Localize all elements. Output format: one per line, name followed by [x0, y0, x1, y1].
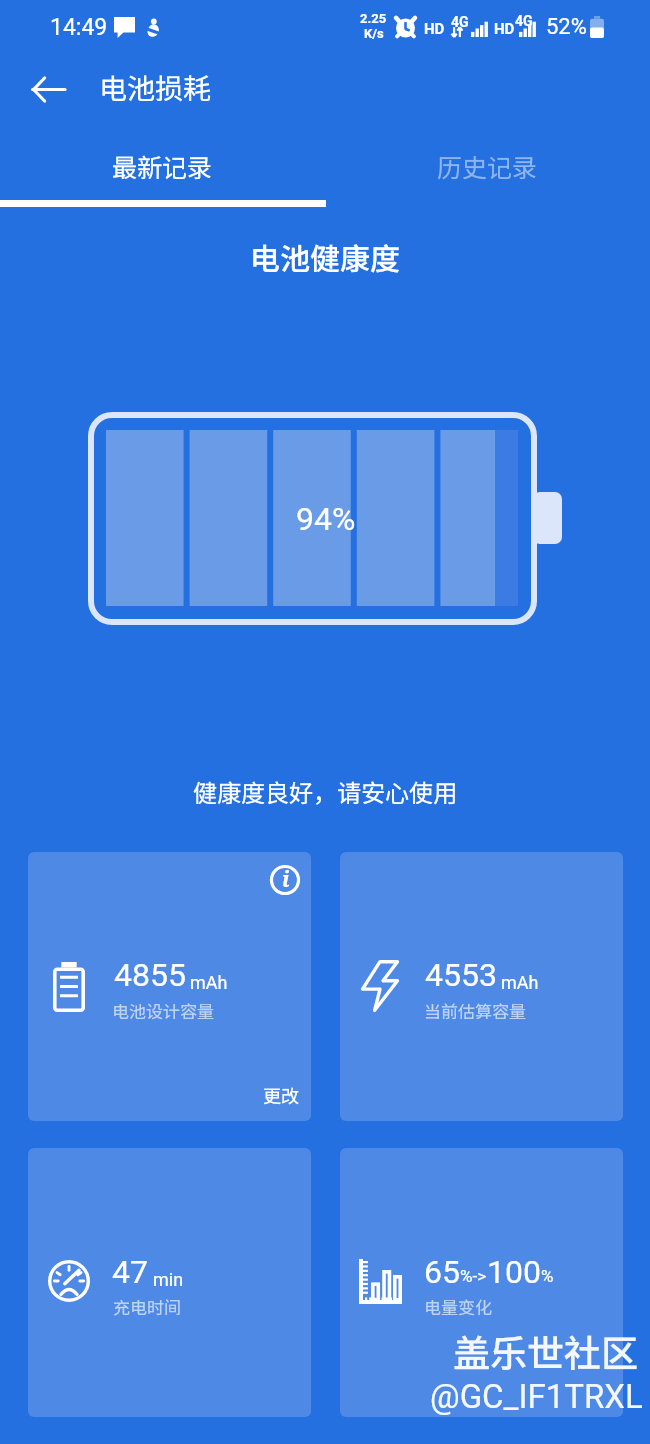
staticText: 14:49: [50, 14, 108, 41]
staticText: 最新记录: [112, 148, 213, 184]
button[interactable]: 历史记录: [325, 132, 650, 200]
staticText: HD: [424, 20, 445, 38]
staticText: 2.25: [360, 11, 387, 26]
staticText: 历史记录: [437, 148, 538, 184]
button[interactable]: 最新记录: [0, 132, 325, 200]
staticText: HD: [494, 20, 515, 38]
staticText: mAh: [190, 972, 228, 993]
button[interactable]: 65: [340, 1148, 623, 1417]
staticText: 4G: [451, 14, 469, 30]
staticText: 充电时间: [113, 1294, 181, 1319]
staticText: 当前估算容量: [424, 998, 526, 1023]
staticText: i: [282, 865, 290, 894]
staticText: 94%: [296, 500, 356, 538]
staticText: 100: [487, 1253, 541, 1291]
staticText: 电池损耗: [99, 67, 212, 108]
button[interactable]: 4553: [340, 852, 623, 1121]
staticText: %->: [460, 1266, 487, 1286]
staticText: 4G: [515, 13, 533, 29]
staticText: 盖乐世社区: [453, 1324, 638, 1378]
staticText: 电池健康度: [250, 235, 400, 278]
staticText: 52%: [546, 14, 587, 40]
staticText: 健康度良好，请安心使用: [193, 774, 457, 809]
staticText: %: [541, 1266, 554, 1286]
button[interactable]: Back: [20, 61, 76, 117]
staticText: 电池设计容量: [112, 998, 214, 1023]
button[interactable]: 47: [28, 1148, 311, 1417]
staticText: 电量变化: [424, 1294, 492, 1319]
staticText: 4553: [425, 956, 497, 994]
button[interactable]: 更改: [263, 1082, 299, 1108]
staticText: 4855: [114, 956, 186, 994]
staticText: K/s: [364, 26, 384, 41]
staticText: 更改: [263, 1082, 299, 1108]
staticText: min: [153, 1269, 184, 1290]
button[interactable]: Info: [28, 852, 311, 1121]
staticText: @GC_IF1TRXL: [430, 1377, 643, 1416]
staticText: 65: [424, 1253, 460, 1291]
button[interactable]: Info: [266, 861, 304, 899]
staticText: 47: [112, 1253, 148, 1291]
staticText: mAh: [501, 972, 539, 993]
